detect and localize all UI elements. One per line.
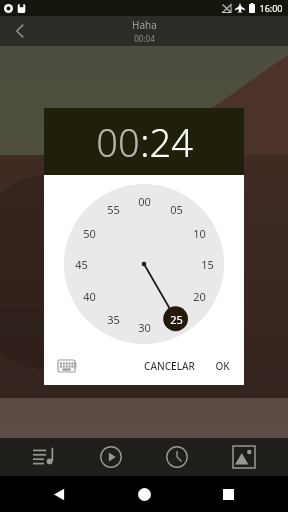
button[interactable]: Recent apps xyxy=(204,476,252,512)
staticText: 55 xyxy=(107,202,120,217)
staticText: 05 xyxy=(170,202,183,217)
button[interactable]: Back xyxy=(0,16,40,46)
staticText: 00 xyxy=(96,116,140,168)
staticText: :24 xyxy=(140,116,193,168)
staticText: 50 xyxy=(83,226,96,241)
staticText: 00 xyxy=(138,194,151,209)
button[interactable]: Switch to keyboard input xyxy=(53,354,79,378)
button[interactable]: Play xyxy=(88,438,134,476)
staticText: 40 xyxy=(83,289,96,304)
button[interactable]: OK xyxy=(210,352,235,380)
staticText: 35 xyxy=(107,312,120,327)
staticText: CANCELAR xyxy=(144,359,195,373)
button[interactable]: Image xyxy=(221,438,267,476)
staticText: 45 xyxy=(75,257,88,272)
staticText: OK xyxy=(215,359,230,373)
staticText: 20 xyxy=(193,289,206,304)
staticText: 25 xyxy=(170,312,183,327)
button[interactable]: Back xyxy=(36,476,84,512)
button[interactable]: Playlist xyxy=(21,438,67,476)
button[interactable]: Home xyxy=(120,476,168,512)
staticText: Haha xyxy=(132,18,157,32)
staticText: 16:00 xyxy=(259,2,283,14)
button[interactable]: Timer xyxy=(154,438,200,476)
staticText: 10 xyxy=(193,226,206,241)
staticText: 00:04 xyxy=(134,33,155,44)
staticText: 30 xyxy=(138,320,151,335)
staticText: 15 xyxy=(201,257,214,272)
button[interactable]: CANCELAR xyxy=(139,352,200,380)
